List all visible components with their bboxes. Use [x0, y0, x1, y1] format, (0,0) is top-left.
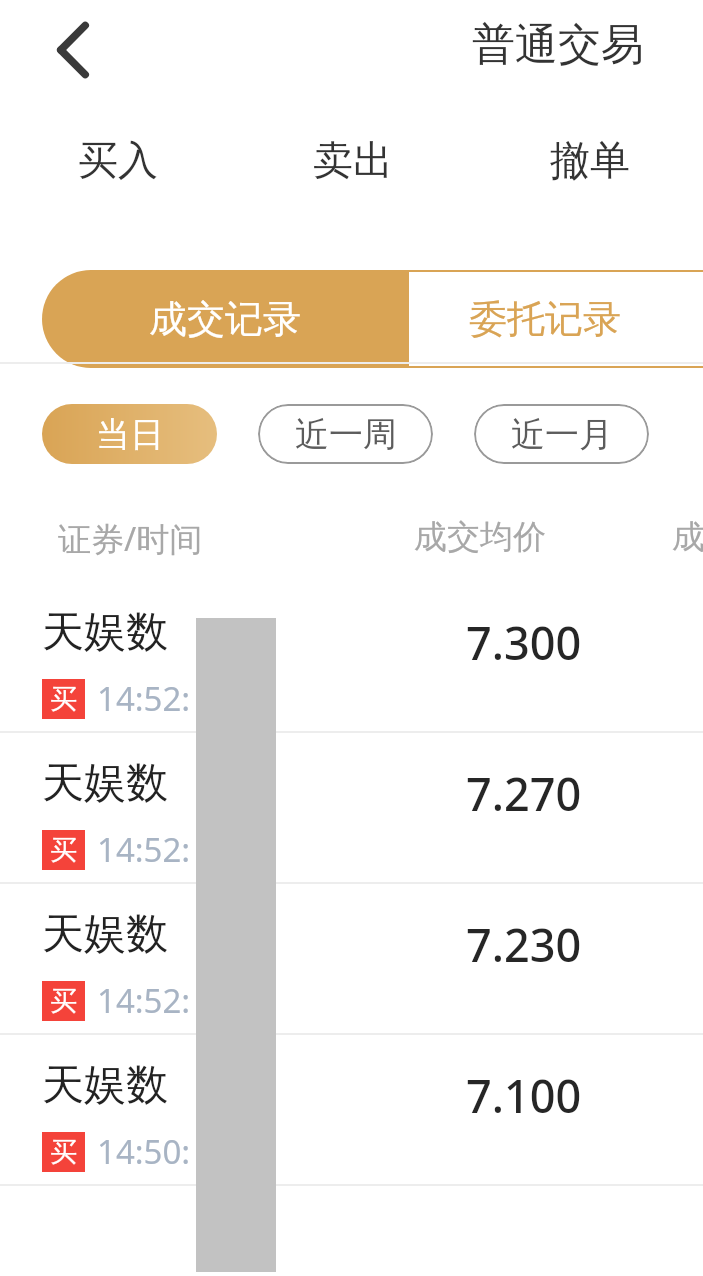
staticText: 7.100 — [466, 1065, 582, 1126]
staticText: 成交均价 — [414, 516, 546, 558]
button[interactable]: 近一周 — [258, 404, 433, 464]
staticText: 14:52: — [97, 827, 191, 872]
staticText: 天娱数 — [42, 1059, 168, 1112]
staticText: 买 — [50, 984, 77, 1018]
staticText: 普通交易 — [472, 18, 644, 72]
button[interactable]: 撤单 — [515, 100, 665, 220]
staticText: 14:52: — [97, 978, 191, 1023]
button[interactable]: 卖出 — [278, 100, 428, 220]
staticText: 天娱数 — [42, 606, 168, 659]
staticText: 14:50: — [97, 1129, 191, 1174]
staticText: 撤单 — [550, 135, 630, 185]
staticText: 成 — [672, 516, 703, 558]
button[interactable]: 天娱数 — [0, 582, 703, 731]
staticText: 天娱数 — [42, 757, 168, 810]
staticText: 买 — [50, 833, 77, 867]
staticText: 买 — [50, 1135, 77, 1169]
button[interactable]: Back — [40, 12, 106, 88]
button[interactable]: 近一月 — [474, 404, 649, 464]
staticText: 7.300 — [466, 612, 582, 673]
button[interactable]: 天娱数 — [0, 1035, 703, 1184]
staticText: 卖出 — [313, 135, 393, 185]
button[interactable]: 成交记录 — [42, 270, 408, 368]
staticText: 天娱数 — [42, 908, 168, 961]
staticText: 证券/时间 — [58, 516, 203, 561]
button[interactable]: 天娱数 — [0, 884, 703, 1033]
button[interactable]: 买入 — [43, 100, 193, 220]
button[interactable]: 天娱数 — [0, 733, 703, 882]
staticText: 14:52: — [97, 676, 191, 721]
staticText: 买入 — [78, 135, 158, 185]
staticText: 7.230 — [466, 914, 582, 975]
staticText: 买 — [50, 682, 77, 716]
staticText: 7.270 — [466, 763, 582, 824]
staticText: 近一周 — [295, 413, 397, 456]
button[interactable]: 委托记录 — [407, 270, 703, 368]
staticText: 近一月 — [511, 413, 613, 456]
staticText: 当日 — [96, 413, 164, 456]
staticText: 委托记录 — [469, 295, 621, 343]
button[interactable]: 当日 — [42, 404, 217, 464]
staticText: 成交记录 — [149, 295, 301, 343]
